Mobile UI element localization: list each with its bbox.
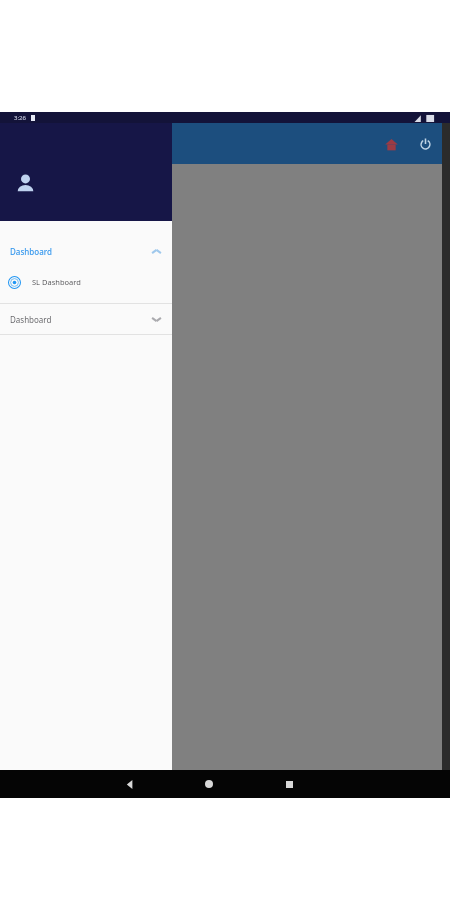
- button[interactable]: Logout: [410, 129, 440, 159]
- staticText: Dashboard: [10, 314, 52, 325]
- staticText: 3:26: [14, 114, 26, 122]
- button[interactable]: Back: [116, 771, 142, 797]
- staticText: Dashboard: [10, 246, 52, 257]
- button[interactable]: SL Dashboard: [0, 269, 172, 295]
- button[interactable]: Dashboard: [0, 237, 172, 265]
- button[interactable]: Home: [196, 771, 222, 797]
- button[interactable]: [0, 123, 172, 221]
- staticText: SL Dashboard: [32, 277, 81, 287]
- button[interactable]: Dashboard: [0, 304, 172, 334]
- button[interactable]: Home: [376, 129, 406, 159]
- button[interactable]: Recent apps: [276, 771, 302, 797]
